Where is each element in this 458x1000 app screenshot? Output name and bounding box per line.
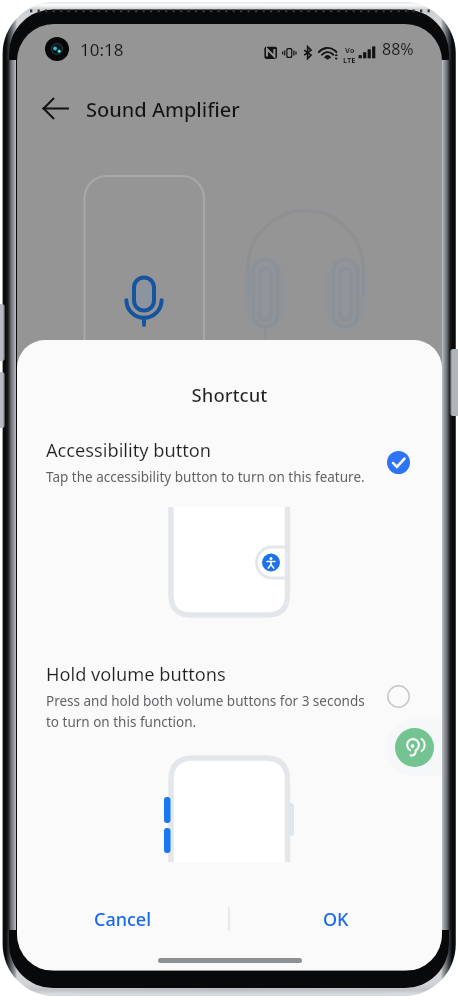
button[interactable]: Hold volume buttons xyxy=(17,662,442,731)
button[interactable]: Accessibility button xyxy=(17,438,442,486)
staticText: OK xyxy=(323,907,349,932)
staticText: Sound Amplifier xyxy=(86,96,240,123)
staticText: Cancel xyxy=(94,907,152,932)
staticText: Shortcut xyxy=(17,382,442,407)
button[interactable]: Accessibility shortcut xyxy=(386,719,442,776)
staticText: LTE xyxy=(343,55,356,65)
staticText: Press and hold both volume buttons for 3… xyxy=(46,692,373,731)
staticText: Vo xyxy=(345,45,355,55)
staticText: Hold volume buttons xyxy=(46,662,226,687)
staticText: Tap the accessibility button to turn on … xyxy=(46,468,365,486)
button[interactable]: OK xyxy=(230,891,442,947)
button[interactable]: Back xyxy=(35,88,75,128)
staticText: 10:18 xyxy=(80,38,124,61)
staticText: 88% xyxy=(382,38,414,60)
staticText: Accessibility button xyxy=(46,438,212,463)
button[interactable]: Cancel xyxy=(17,891,228,947)
